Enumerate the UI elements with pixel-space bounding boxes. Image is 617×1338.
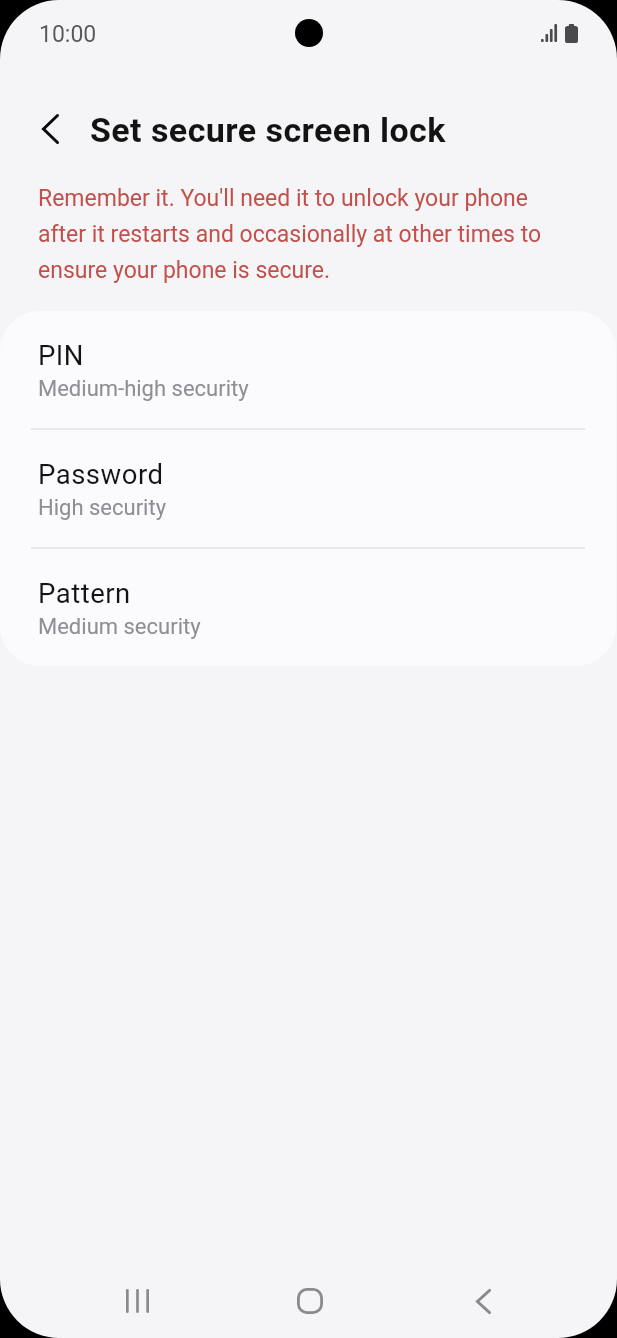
button[interactable]: Navigate up bbox=[26, 105, 74, 153]
button[interactable]: Recent apps bbox=[113, 1272, 161, 1330]
staticText: High security bbox=[38, 494, 167, 520]
button[interactable]: Password bbox=[0, 430, 616, 547]
staticText: Pattern bbox=[38, 578, 131, 610]
staticText: Medium-high security bbox=[38, 375, 249, 401]
staticText: PIN bbox=[38, 340, 84, 372]
button[interactable]: Back bbox=[459, 1272, 507, 1330]
staticText: 10:00 bbox=[39, 21, 97, 48]
button[interactable]: PIN bbox=[0, 311, 616, 428]
staticText: Set secure screen lock bbox=[90, 110, 446, 150]
button[interactable]: Pattern bbox=[0, 549, 616, 666]
staticText: Remember it. You'll need it to unlock yo… bbox=[38, 177, 554, 285]
staticText: Medium security bbox=[38, 613, 201, 639]
staticText: Password bbox=[38, 459, 164, 491]
button[interactable]: Home bbox=[286, 1272, 334, 1330]
